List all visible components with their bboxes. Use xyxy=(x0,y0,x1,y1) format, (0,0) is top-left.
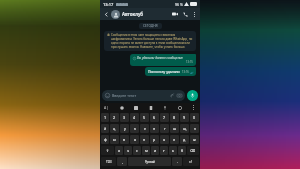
staticText: 1 xyxy=(104,115,107,120)
staticText: 8 xyxy=(173,115,176,120)
button[interactable]: п xyxy=(140,135,149,144)
button[interactable]: м xyxy=(142,146,150,155)
button[interactable]: Введите текст xyxy=(102,90,185,101)
button[interactable]: а xyxy=(130,135,139,144)
staticText: ж xyxy=(193,137,196,142)
button[interactable]: 5 xyxy=(140,113,149,122)
button[interactable]: г xyxy=(160,124,169,133)
staticText: ?123 xyxy=(106,160,112,164)
button[interactable]: щ xyxy=(180,124,189,133)
button[interactable]: Video call xyxy=(170,9,180,19)
button[interactable]: Send voice message xyxy=(187,90,198,101)
staticText: о xyxy=(163,137,166,142)
button[interactable]: . xyxy=(172,157,182,166)
button[interactable]: Keyboard menu xyxy=(190,104,197,111)
staticText: з xyxy=(194,126,196,131)
staticText: п xyxy=(143,137,146,142)
staticText: 13:15 xyxy=(186,60,193,64)
button[interactable]: 7 xyxy=(160,113,169,122)
button[interactable]: р xyxy=(150,135,159,144)
button[interactable]: Поскольку удаляли xyxy=(145,67,196,76)
staticText: 0 xyxy=(193,115,196,120)
staticText: с xyxy=(136,148,138,153)
button[interactable]: 8 xyxy=(170,113,179,122)
staticText: 4 xyxy=(133,115,136,120)
staticText: Сообщения в этом чате защищены сквозным … xyxy=(111,33,193,49)
staticText: к xyxy=(134,126,136,131)
staticText: , xyxy=(122,159,123,164)
button[interactable]: с xyxy=(133,146,141,155)
button[interactable]: о xyxy=(160,135,169,144)
button[interactable]: Русский xyxy=(128,157,171,166)
button[interactable]: з xyxy=(190,124,199,133)
button[interactable]: я xyxy=(115,146,123,155)
staticText: 6 xyxy=(153,115,156,120)
button[interactable]: б xyxy=(178,146,186,155)
button[interactable]: й xyxy=(101,124,109,133)
staticText: ⌫ xyxy=(190,149,196,153)
button[interactable]: 4 xyxy=(130,113,139,122)
button[interactable]: к xyxy=(130,124,139,133)
button[interactable]: 3 xyxy=(120,113,129,122)
staticText: ⇧ xyxy=(106,149,110,153)
button[interactable]: ч xyxy=(124,146,132,155)
button[interactable]: Keyboard tool 1 xyxy=(118,104,125,111)
button[interactable]: ф xyxy=(101,135,109,144)
button[interactable]: , xyxy=(117,157,127,166)
button[interactable]: л xyxy=(170,135,179,144)
button[interactable]: Keyboard tool 5 xyxy=(176,104,183,111)
staticText: ь xyxy=(172,148,174,153)
button[interactable]: ⏎ xyxy=(183,157,199,166)
staticText: л xyxy=(173,137,176,142)
button[interactable]: 9 xyxy=(180,113,189,122)
staticText: а xyxy=(134,137,136,142)
staticText: щ xyxy=(183,126,187,131)
button[interactable]: ы xyxy=(110,135,119,144)
button[interactable]: Keyboard tool 3 xyxy=(147,104,154,111)
button[interactable]: д xyxy=(180,135,189,144)
button[interactable]: в xyxy=(120,135,129,144)
staticText: г xyxy=(164,126,166,131)
button[interactable]: н xyxy=(150,124,159,133)
button[interactable]: More options xyxy=(190,10,198,18)
button[interactable]: ь xyxy=(169,146,177,155)
button[interactable]: и xyxy=(151,146,159,155)
staticText: 7 xyxy=(163,115,166,120)
button[interactable]: Back xyxy=(102,10,111,19)
button[interactable]: е xyxy=(140,124,149,133)
staticText: 13:17 xyxy=(103,2,114,7)
button[interactable]: т xyxy=(160,146,168,155)
button[interactable]: ?123 xyxy=(101,157,116,166)
staticText: Вы удалили данное сообщение xyxy=(137,56,183,60)
button[interactable]: Сообщения в этом чате защищены сквозным … xyxy=(104,31,196,51)
button[interactable]: ш xyxy=(170,124,179,133)
button[interactable]: ⌫ xyxy=(187,146,199,155)
staticText: в xyxy=(123,137,126,142)
button[interactable]: 6 xyxy=(150,113,159,122)
staticText: A| xyxy=(104,105,109,110)
staticText: . xyxy=(177,159,178,164)
staticText: б xyxy=(181,148,184,153)
staticText: т xyxy=(163,148,165,153)
button[interactable]: Call xyxy=(180,9,190,19)
button[interactable]: Keyboard tool 4 xyxy=(161,104,168,111)
button[interactable]: ж xyxy=(190,135,199,144)
button[interactable]: Автоклуб xyxy=(122,11,170,17)
button[interactable]: Вы удалили данное сообщение xyxy=(130,54,196,66)
button[interactable]: 0 xyxy=(190,113,199,122)
staticText: Русский xyxy=(145,160,155,164)
staticText: ⏎ xyxy=(189,160,193,164)
button[interactable]: Keyboard tool 2 xyxy=(132,104,139,111)
staticText: Поскольку удаляли xyxy=(148,69,180,74)
button[interactable]: у xyxy=(120,124,129,133)
button[interactable]: ц xyxy=(110,124,119,133)
button[interactable]: ⇧ xyxy=(101,146,114,155)
staticText: ф xyxy=(104,137,107,142)
button[interactable]: Switch keyboard xyxy=(103,104,110,111)
staticText: 9 xyxy=(183,115,186,120)
staticText: ш xyxy=(173,126,177,131)
staticText: н xyxy=(153,126,156,131)
button[interactable]: 2 xyxy=(110,113,119,122)
button[interactable]: 1 xyxy=(101,113,109,122)
staticText: Введите текст xyxy=(112,93,137,98)
